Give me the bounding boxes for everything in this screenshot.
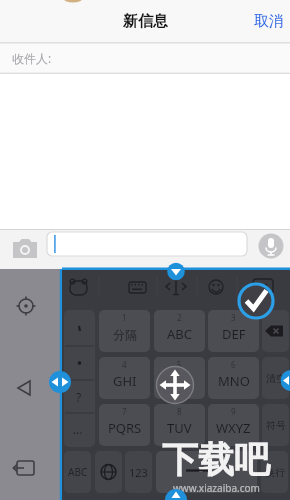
button[interactable]: 9 bbox=[208, 404, 259, 446]
button[interactable] bbox=[262, 310, 289, 352]
button[interactable]: 符号 bbox=[262, 404, 289, 446]
staticText: 6 bbox=[231, 359, 236, 370]
button[interactable]: ABC bbox=[64, 451, 91, 493]
button[interactable] bbox=[66, 275, 92, 299]
staticText: 3 bbox=[231, 312, 236, 323]
button[interactable] bbox=[124, 275, 150, 299]
button[interactable]: 取消 bbox=[250, 10, 288, 32]
staticText: 2 bbox=[177, 312, 182, 323]
button[interactable]: 7 bbox=[99, 404, 150, 446]
staticText: ABC bbox=[68, 465, 88, 479]
button[interactable] bbox=[279, 370, 290, 392]
staticText: 5 bbox=[177, 359, 182, 370]
button[interactable]: 收件人: bbox=[0, 43, 290, 73]
button[interactable] bbox=[12, 457, 36, 479]
staticText: WXYZ bbox=[216, 419, 251, 437]
staticText: 换行 bbox=[265, 466, 285, 479]
staticText: 符号 bbox=[266, 419, 286, 432]
staticText: 7 bbox=[122, 406, 127, 417]
button[interactable] bbox=[10, 236, 40, 262]
button[interactable]: 123 bbox=[125, 451, 152, 493]
staticText: GHI bbox=[113, 372, 137, 390]
button[interactable] bbox=[203, 275, 229, 299]
staticText: 取消 bbox=[254, 12, 284, 31]
button[interactable] bbox=[258, 233, 285, 260]
staticText: ABC bbox=[167, 325, 192, 343]
staticText: 收件人: bbox=[12, 50, 52, 66]
staticText: 新信息 bbox=[123, 12, 168, 31]
staticText: 下载吧 bbox=[162, 437, 270, 482]
button[interactable] bbox=[156, 451, 257, 493]
staticText: 8 bbox=[177, 406, 182, 417]
staticText: JKL bbox=[170, 372, 189, 390]
button[interactable]: 换行 bbox=[261, 451, 288, 493]
button[interactable]: 清空 bbox=[262, 357, 289, 399]
button[interactable]: 3 bbox=[208, 310, 259, 352]
staticText: DEF bbox=[222, 325, 246, 343]
button[interactable] bbox=[166, 261, 186, 281]
button[interactable]: 2 bbox=[154, 310, 205, 352]
button[interactable] bbox=[163, 275, 189, 299]
button[interactable] bbox=[239, 284, 274, 319]
button[interactable] bbox=[249, 274, 277, 298]
staticText: www.xiazaiba.com bbox=[173, 481, 260, 495]
button[interactable] bbox=[15, 295, 37, 317]
staticText: 123 bbox=[129, 465, 148, 480]
staticText: 4 bbox=[122, 359, 127, 370]
button[interactable]: 1 bbox=[99, 310, 150, 352]
staticText: 1 bbox=[122, 312, 127, 323]
button[interactable] bbox=[95, 451, 122, 493]
button[interactable] bbox=[47, 232, 247, 256]
button[interactable] bbox=[165, 489, 187, 500]
button[interactable] bbox=[13, 377, 35, 399]
button[interactable]: 8 bbox=[154, 404, 205, 446]
button[interactable]: 6 bbox=[208, 357, 259, 399]
staticText: MNO bbox=[218, 372, 250, 390]
staticText: ? bbox=[76, 389, 82, 405]
staticText: … bbox=[73, 421, 83, 437]
staticText: 分隔 bbox=[113, 327, 137, 342]
button[interactable]: 4 bbox=[99, 357, 150, 399]
button[interactable] bbox=[155, 365, 195, 405]
staticText: 9 bbox=[231, 406, 236, 417]
button[interactable] bbox=[64, 310, 95, 447]
staticText: PQRS bbox=[108, 419, 142, 437]
staticText: TUV bbox=[167, 419, 192, 437]
staticText: 清空 bbox=[266, 372, 286, 385]
button[interactable]: 5 bbox=[154, 357, 205, 399]
button[interactable] bbox=[49, 371, 71, 393]
